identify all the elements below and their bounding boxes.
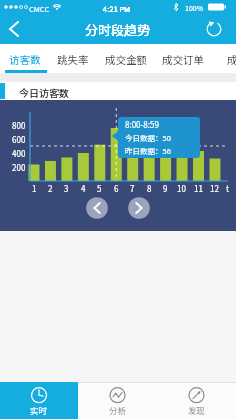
staticText: CMCC	[29, 3, 50, 14]
staticText: 1	[32, 183, 37, 195]
staticText: 800	[12, 120, 26, 132]
staticText: 实时	[30, 404, 48, 416]
staticText: 4	[81, 183, 86, 195]
staticText: 8:00-8:59	[125, 119, 159, 131]
button[interactable]	[100, 44, 152, 73]
staticText: 400	[12, 148, 26, 160]
staticText: 10	[177, 183, 186, 195]
staticText: 今日访客数	[19, 85, 69, 99]
staticText: 4:21 PM	[103, 3, 131, 14]
button[interactable]: 实时	[0, 382, 78, 419]
staticText: 7	[130, 183, 135, 195]
staticText: 跳失率	[57, 52, 89, 67]
staticText: 成交金额	[105, 52, 147, 67]
staticText: 今日数据：50	[125, 132, 171, 143]
button[interactable]	[158, 44, 210, 73]
staticText: 9	[163, 183, 168, 195]
staticText: 分析	[109, 404, 127, 416]
staticText: 4:21 PM	[103, 3, 131, 14]
staticText: 6	[114, 183, 119, 195]
button[interactable]	[128, 197, 150, 219]
button[interactable]	[204, 19, 224, 39]
button[interactable]	[0, 14, 30, 44]
staticText: 200	[12, 162, 26, 174]
button[interactable]: 分析	[78, 382, 157, 419]
staticText: 发现	[188, 404, 206, 416]
staticText: 3	[64, 183, 69, 195]
staticText: 昨日数据：56	[125, 145, 171, 156]
button[interactable]	[52, 44, 94, 73]
button[interactable]	[0, 44, 52, 73]
staticText: 分时段趋势	[85, 20, 151, 39]
staticText: t	[226, 183, 230, 195]
staticText: 分时段趋势	[85, 20, 151, 39]
staticText: 8	[147, 183, 152, 195]
staticText: 12	[210, 183, 219, 195]
staticText: 600	[12, 134, 26, 146]
button[interactable]: 发现	[157, 382, 236, 419]
staticText: 成交转化率	[227, 52, 236, 67]
staticText: 访客数	[9, 52, 41, 67]
button[interactable]	[86, 197, 108, 219]
staticText: 100%	[185, 3, 204, 13]
staticText: 2	[48, 183, 53, 195]
staticText: 5	[97, 183, 102, 195]
staticText: 11	[194, 183, 203, 195]
staticText: 今日访客数	[19, 85, 69, 99]
staticText: 成交订单	[162, 52, 204, 67]
